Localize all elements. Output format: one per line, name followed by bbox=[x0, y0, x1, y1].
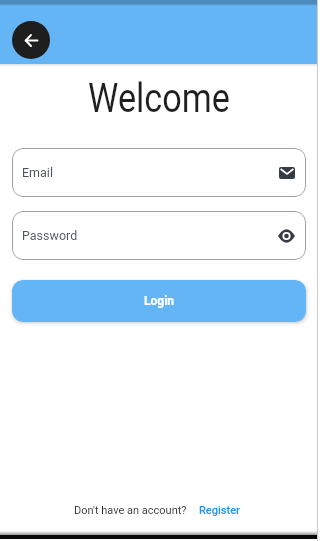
button[interactable]: Login bbox=[12, 280, 306, 322]
button[interactable]: Email bbox=[12, 148, 306, 197]
button[interactable]: Password bbox=[12, 211, 306, 260]
staticText: Don't have an account? bbox=[74, 504, 187, 517]
button[interactable]: Register bbox=[199, 504, 240, 517]
button[interactable] bbox=[12, 21, 50, 59]
staticText: Login bbox=[144, 294, 175, 308]
staticText: Email bbox=[22, 165, 53, 180]
staticText: Welcome bbox=[23, 75, 295, 122]
staticText: Password bbox=[22, 228, 78, 243]
